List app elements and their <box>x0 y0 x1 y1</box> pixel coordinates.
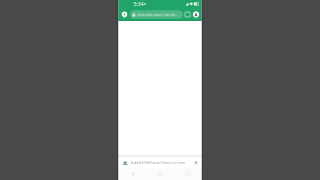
staticText: example-news.com/article <box>137 12 179 17</box>
button[interactable]: Back <box>118 168 146 180</box>
button[interactable]: Site information <box>119 8 130 21</box>
button[interactable]: Add AllTheFun to Home screen <box>118 157 190 168</box>
button[interactable]: Account <box>191 8 200 21</box>
staticText: 5:34 <box>133 0 143 8</box>
button[interactable]: example-news.com/article <box>130 10 183 19</box>
button[interactable]: Recent apps <box>174 168 201 180</box>
button[interactable]: Dismiss <box>190 157 201 168</box>
staticText: Add AllTheFun to Home screen <box>130 160 184 165</box>
button[interactable]: Switch tabs <box>183 8 191 21</box>
